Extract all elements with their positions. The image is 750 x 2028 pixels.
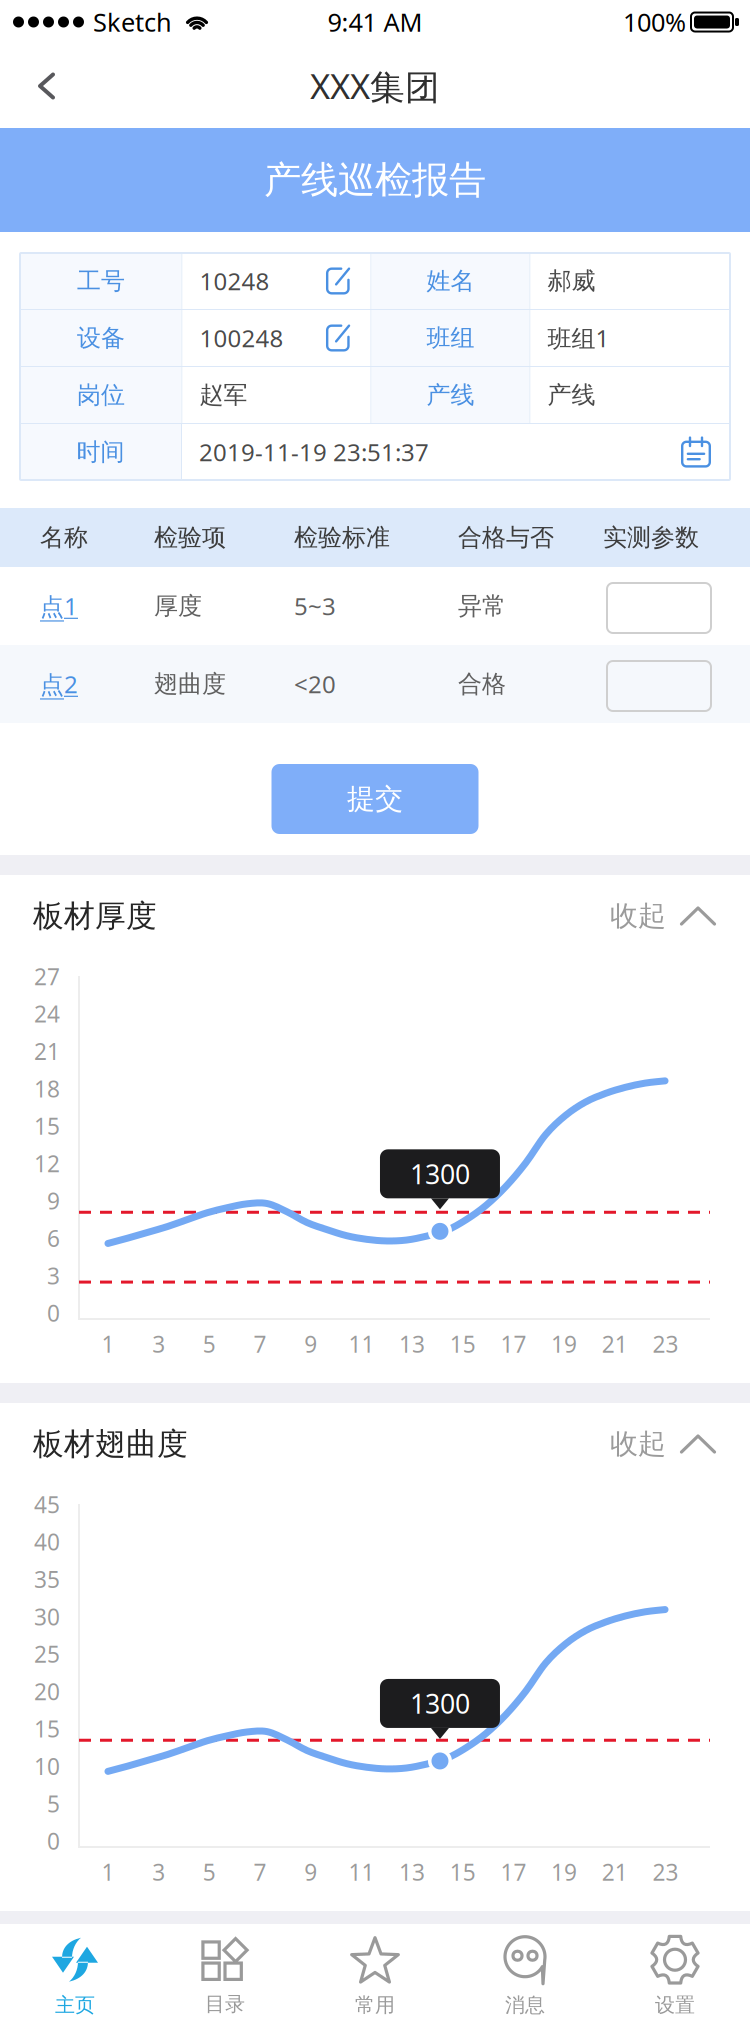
staticText: 点1 — [40, 590, 78, 622]
staticText: 厚度 — [154, 591, 202, 621]
staticText: 收起 — [610, 1427, 666, 1461]
button[interactable]: Pick date — [676, 432, 716, 472]
staticText: 35 — [34, 1564, 60, 1594]
staticText: 13 — [399, 1329, 425, 1359]
button[interactable]: 常用 — [300, 1926, 450, 2026]
button[interactable]: 收起 — [610, 1415, 716, 1473]
staticText: 23 — [652, 1857, 678, 1887]
staticText: 15 — [450, 1329, 476, 1359]
staticText: 9 — [304, 1329, 317, 1359]
staticText: 3 — [152, 1857, 165, 1887]
staticText: 目录 — [205, 1992, 245, 2016]
button[interactable]: 目录 — [150, 1926, 300, 2026]
staticText: 45 — [34, 1489, 60, 1519]
staticText: 9:41 AM — [327, 5, 422, 39]
button[interactable]: 点1 — [40, 567, 154, 645]
button[interactable]: 收起 — [610, 887, 716, 945]
staticText: 设置 — [655, 1993, 695, 2017]
staticText: 板材翅曲度 — [33, 1425, 188, 1463]
staticText: 100% — [623, 5, 686, 39]
button[interactable]: Edit — [320, 319, 358, 357]
staticText: 收起 — [610, 899, 666, 933]
staticText: 1300 — [410, 1686, 470, 1721]
staticText: 3 — [47, 1260, 60, 1291]
staticText: 产线 — [547, 380, 595, 410]
staticText: 名称 — [40, 523, 88, 552]
staticText: 5~3 — [294, 590, 336, 622]
staticText: 0 — [47, 1298, 60, 1328]
staticText: 翅曲度 — [154, 669, 226, 699]
staticText: 21 — [34, 1036, 60, 1066]
staticText: 10 — [34, 1751, 60, 1781]
staticText: 点2 — [40, 668, 78, 700]
staticText: 10248 — [199, 265, 269, 297]
staticText: 21 — [602, 1857, 628, 1887]
staticText: 班组1 — [547, 322, 609, 354]
staticText: 主页 — [55, 1993, 95, 2017]
button[interactable]: Edit — [320, 262, 358, 300]
staticText: 11 — [348, 1857, 374, 1887]
staticText: 6 — [47, 1223, 60, 1253]
staticText: 19 — [551, 1857, 577, 1887]
staticText: 检验项 — [154, 523, 226, 552]
staticText: 班组 — [426, 323, 474, 353]
staticText: 18 — [34, 1073, 60, 1104]
staticText: 100248 — [199, 322, 283, 354]
staticText: 常用 — [355, 1993, 395, 2017]
staticText: 1 — [101, 1857, 114, 1887]
staticText: 工号 — [77, 266, 125, 296]
button[interactable]: 主页 — [0, 1926, 150, 2026]
staticText: 2019-11-19 23:51:37 — [199, 436, 429, 468]
staticText: 0 — [47, 1826, 60, 1856]
staticText: 5 — [203, 1857, 216, 1887]
staticText: 11 — [348, 1329, 374, 1359]
button[interactable]: 设置 — [600, 1926, 750, 2026]
staticText: 17 — [500, 1329, 526, 1359]
staticText: 5 — [203, 1329, 216, 1359]
staticText: 3 — [152, 1329, 165, 1359]
staticText: 9 — [47, 1186, 60, 1216]
staticText: 1 — [101, 1329, 114, 1359]
button[interactable]: 提交 — [271, 764, 478, 834]
staticText: 25 — [34, 1639, 60, 1669]
staticText: 15 — [34, 1111, 60, 1141]
staticText: 21 — [602, 1329, 628, 1359]
staticText: 15 — [34, 1714, 60, 1744]
staticText: 13 — [399, 1857, 425, 1887]
button[interactable]: 点2 — [40, 645, 154, 723]
staticText: 1300 — [410, 1156, 470, 1191]
staticText: 7 — [253, 1329, 266, 1359]
staticText: 时间 — [76, 437, 124, 467]
staticText: 实测参数 — [603, 523, 699, 552]
staticText: 岗位 — [77, 380, 125, 410]
staticText: 40 — [34, 1527, 60, 1557]
staticText: 24 — [34, 999, 60, 1029]
staticText: <20 — [294, 668, 336, 700]
staticText: 9 — [304, 1857, 317, 1887]
staticText: 检验标准 — [294, 523, 390, 552]
button[interactable]: 消息 — [450, 1926, 600, 2026]
staticText: 合格 — [458, 669, 506, 699]
staticText: 赵军 — [199, 380, 247, 410]
staticText: 5 — [47, 1788, 60, 1819]
staticText: 合格与否 — [458, 523, 554, 552]
staticText: 姓名 — [426, 266, 474, 296]
staticText: 郝威 — [547, 266, 595, 296]
staticText: 12 — [34, 1148, 60, 1178]
staticText: 消息 — [505, 1993, 545, 2017]
staticText: 产线巡检报告 — [264, 157, 486, 203]
staticText: 27 — [34, 961, 60, 991]
staticText: 19 — [551, 1329, 577, 1359]
staticText: 设备 — [77, 323, 125, 353]
staticText: 20 — [34, 1676, 60, 1706]
staticText: 15 — [450, 1857, 476, 1887]
staticText: 板材厚度 — [33, 897, 157, 935]
staticText: Sketch — [93, 5, 172, 39]
staticText: 7 — [253, 1857, 266, 1887]
staticText: 产线 — [426, 380, 474, 410]
staticText: 提交 — [347, 782, 403, 816]
button[interactable]: Back — [0, 47, 85, 124]
staticText: 23 — [652, 1329, 678, 1359]
staticText: XXX集团 — [310, 63, 440, 109]
staticText: 异常 — [458, 591, 506, 621]
